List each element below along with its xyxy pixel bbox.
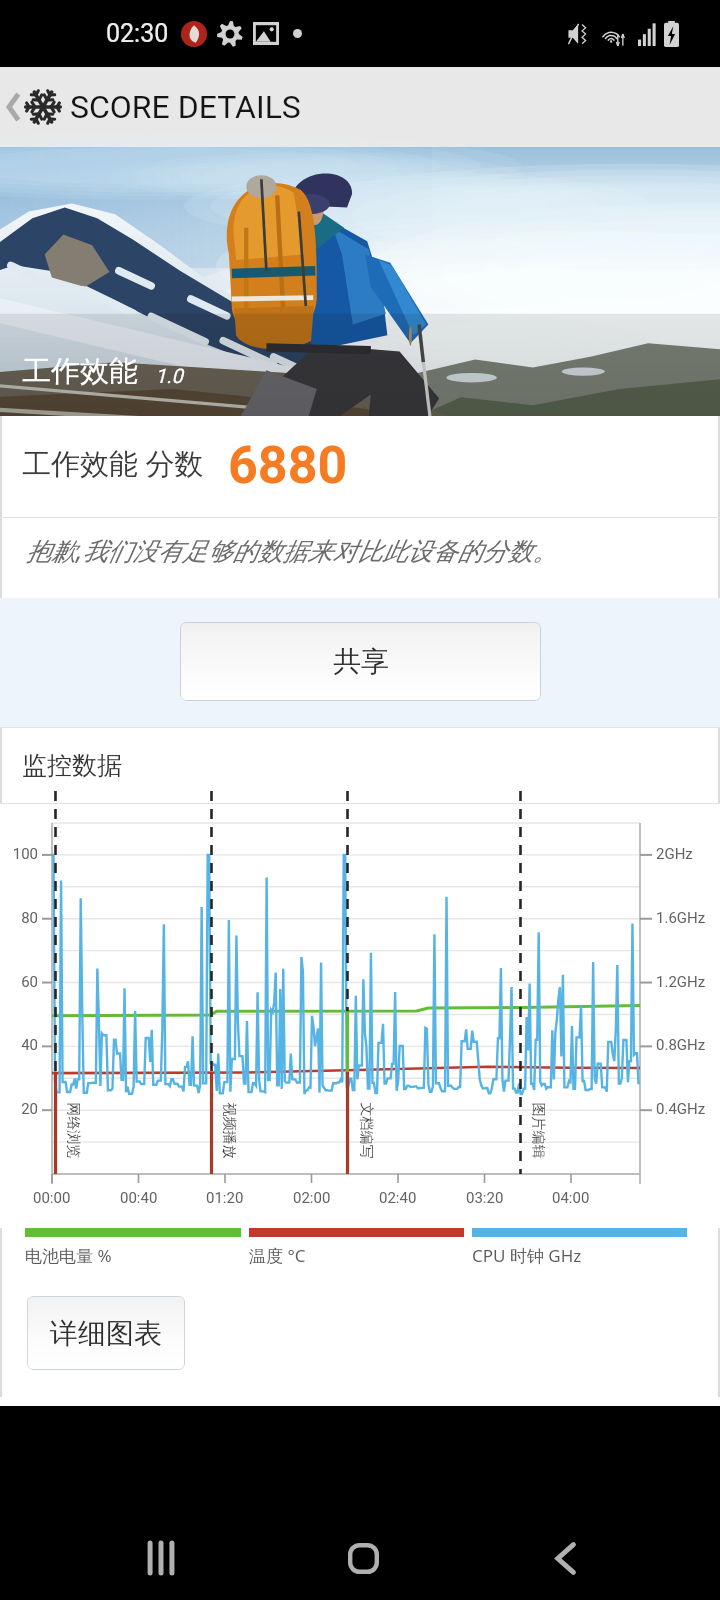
staticText: 100 [0,845,38,863]
staticText: 80 [0,909,38,927]
staticText: 1.6GHz [656,909,706,927]
staticText: 1.2GHz [656,973,706,991]
staticText: 2GHz [656,845,693,863]
staticText: 抱歉,我们没有足够的数据来对比此设备的分数。 [26,533,558,567]
button[interactable]: Back [0,67,61,147]
staticText: SCORE DETAILS [70,88,301,126]
staticText: 工作效能 分数 [22,443,204,483]
staticText: 00:00 [33,1189,71,1207]
staticText: 视频播放 [219,1102,237,1158]
staticText: 40 [0,1036,38,1054]
staticText: 共享 [333,644,389,679]
staticText: 00:40 [120,1189,158,1207]
staticText: 03:20 [466,1189,504,1207]
staticText: 6880 [228,435,348,496]
button[interactable]: 共享 [180,622,541,701]
staticText: 04:00 [552,1189,590,1207]
staticText: 温度 °C [249,1244,306,1267]
staticText: 1.0 [155,364,183,387]
button[interactable]: Home [303,1498,423,1600]
staticText: 0.4GHz [656,1100,706,1118]
staticText: 电池电量 % [25,1244,112,1267]
staticText: 02:00 [293,1189,331,1207]
staticText: CPU 时钟 GHz [472,1244,582,1267]
staticText: 详细图表 [50,1316,162,1351]
staticText: 监控数据 [22,750,122,781]
staticText: 文档编写 [356,1102,374,1158]
staticText: 20 [0,1100,38,1118]
staticText: 01:20 [206,1189,244,1207]
staticText: 网络浏览 [63,1102,81,1158]
staticText: 0.8GHz [656,1036,706,1054]
staticText: 图片编辑 [528,1102,546,1158]
button[interactable]: 详细图表 [27,1296,185,1370]
staticText: 02:30 [106,19,169,48]
staticText: 60 [0,973,38,991]
staticText: 工作效能 [22,353,138,390]
staticText: 02:40 [379,1189,417,1207]
button[interactable]: Back [505,1498,625,1600]
button[interactable]: Recent apps [101,1498,221,1600]
